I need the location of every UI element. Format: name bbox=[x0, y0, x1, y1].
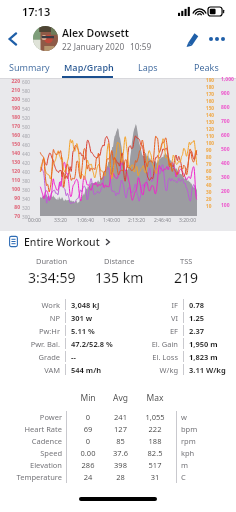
staticText: kph bbox=[181, 448, 195, 458]
staticText: Cadence bbox=[0, 436, 62, 446]
staticText: 190 bbox=[206, 77, 219, 83]
staticText: rpm bbox=[181, 436, 196, 446]
staticText: w bbox=[181, 412, 187, 422]
staticText: 398 bbox=[104, 460, 137, 470]
staticText: Laps bbox=[138, 61, 158, 73]
staticText: 600 bbox=[221, 132, 230, 139]
staticText: 140 bbox=[0, 150, 20, 157]
staticText: 70 bbox=[206, 161, 219, 167]
staticText: 50 bbox=[206, 175, 219, 181]
staticText: 1,823 m bbox=[189, 352, 218, 362]
staticText: 90 bbox=[206, 147, 219, 153]
staticText: Entire Workout bbox=[24, 235, 100, 249]
staticText: 100 bbox=[0, 186, 20, 193]
staticText: 220 bbox=[0, 78, 20, 85]
staticText: 3.11 W/kg bbox=[189, 365, 226, 375]
staticText: 120 bbox=[206, 126, 219, 132]
staticText: 1.25 bbox=[189, 313, 204, 323]
staticText: 127 bbox=[104, 424, 137, 434]
button[interactable]: Edit bbox=[178, 26, 204, 52]
staticText: 420 bbox=[22, 160, 31, 166]
staticText: VAM bbox=[0, 365, 60, 375]
staticText: bpm bbox=[181, 424, 198, 434]
staticText: 40 bbox=[206, 182, 219, 188]
staticText: 110 bbox=[0, 177, 20, 184]
staticText: Elevation bbox=[0, 460, 62, 470]
button[interactable]: Laps bbox=[118, 55, 177, 79]
staticText: Peaks bbox=[194, 61, 219, 73]
staticText: 190 bbox=[0, 105, 20, 112]
staticText: 130 bbox=[0, 159, 20, 166]
staticText: -- bbox=[71, 352, 76, 362]
staticText: 150 bbox=[0, 141, 20, 148]
staticText: Temperature bbox=[0, 472, 62, 482]
staticText: 2:13:20 bbox=[128, 217, 145, 224]
staticText: Power bbox=[0, 412, 62, 422]
staticText: 2.37 bbox=[189, 326, 204, 336]
staticText: 28 bbox=[104, 472, 137, 482]
staticText: 560 bbox=[22, 97, 31, 103]
button[interactable]: Summary bbox=[0, 55, 59, 79]
staticText: 520 bbox=[22, 115, 31, 121]
staticText: 340 bbox=[22, 196, 31, 202]
staticText: 140 bbox=[206, 112, 219, 118]
staticText: 10:59 bbox=[130, 41, 152, 52]
staticText: 500 bbox=[221, 146, 230, 153]
staticText: Speed bbox=[0, 448, 62, 458]
staticText: 20 bbox=[206, 196, 219, 202]
staticText: C bbox=[181, 472, 186, 482]
staticText: 170 bbox=[0, 123, 20, 130]
staticText: 200 bbox=[221, 188, 230, 195]
staticText: 60 bbox=[206, 168, 219, 174]
staticText: 160 bbox=[0, 132, 20, 139]
staticText: 31 bbox=[137, 472, 173, 482]
staticText: 47.2/52.8 % bbox=[71, 339, 113, 349]
staticText: 0.00 bbox=[72, 448, 104, 458]
button[interactable]: Peaks bbox=[177, 55, 236, 79]
staticText: 400 bbox=[22, 169, 31, 175]
staticText: 2:46:40 bbox=[154, 217, 171, 224]
staticText: Max bbox=[137, 392, 173, 404]
staticText: EF bbox=[118, 326, 178, 336]
staticText: 3:20:00 bbox=[179, 217, 196, 224]
staticText: Heart Rate bbox=[0, 424, 62, 434]
staticText: 600 bbox=[22, 79, 31, 85]
staticText: 17:13 bbox=[22, 4, 51, 19]
staticText: 33:20 bbox=[54, 217, 67, 224]
staticText: Grade bbox=[0, 352, 60, 362]
staticText: 180 bbox=[0, 114, 20, 121]
staticText: 900 bbox=[221, 90, 230, 97]
staticText: 100 bbox=[206, 140, 219, 146]
staticText: 301 w bbox=[71, 313, 93, 323]
staticText: Alex Dowsett bbox=[62, 26, 130, 40]
staticText: Duration bbox=[36, 256, 68, 266]
staticText: 100 bbox=[221, 202, 230, 209]
staticText: 110 bbox=[206, 133, 219, 139]
button[interactable]: Entire Workout bbox=[0, 233, 236, 250]
staticText: 1:40:00 bbox=[103, 217, 120, 224]
staticText: 0 bbox=[72, 412, 104, 422]
button[interactable]: More options bbox=[204, 26, 230, 52]
staticText: VI bbox=[118, 313, 178, 323]
staticText: Pwr. Bal. bbox=[0, 339, 60, 349]
staticText: 320 bbox=[22, 205, 31, 211]
staticText: 517 bbox=[137, 460, 173, 470]
button[interactable]: Map/Graph bbox=[59, 55, 118, 79]
staticText: 360 bbox=[22, 187, 31, 193]
staticText: 30 bbox=[206, 189, 219, 195]
staticText: 69 bbox=[72, 424, 104, 434]
staticText: 460 bbox=[22, 142, 31, 148]
staticText: IF bbox=[118, 300, 178, 310]
staticText: 480 bbox=[22, 133, 31, 139]
staticText: Work bbox=[0, 300, 60, 310]
staticText: Pw:Hr bbox=[0, 326, 60, 336]
staticText: 135 km bbox=[95, 268, 144, 287]
staticText: 241 bbox=[104, 412, 137, 422]
staticText: 222 bbox=[137, 424, 173, 434]
staticText: m bbox=[181, 460, 189, 470]
staticText: 380 bbox=[22, 178, 31, 184]
staticText: Summary bbox=[9, 61, 50, 73]
staticText: 80 bbox=[0, 204, 20, 211]
button[interactable]: Back bbox=[2, 28, 24, 50]
staticText: 219 bbox=[174, 268, 199, 287]
